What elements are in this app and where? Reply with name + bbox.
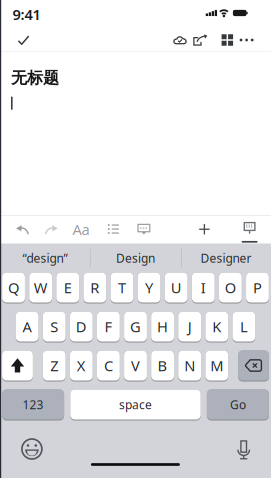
button[interactable]: F [97, 311, 120, 342]
staticText: R [90, 278, 99, 297]
staticText: X [77, 356, 86, 375]
button[interactable]: Designer [181, 243, 271, 272]
staticText: A [23, 317, 32, 336]
button[interactable]: P [246, 272, 269, 303]
staticText: V [131, 356, 140, 375]
button[interactable]: G [124, 311, 147, 342]
staticText: Z [50, 356, 58, 375]
button[interactable]: Undo [16, 224, 30, 235]
button[interactable]: S [43, 311, 66, 342]
button[interactable]: Design [90, 243, 181, 272]
staticText: E [64, 278, 72, 297]
staticText: B [158, 356, 168, 375]
staticText: 123 [23, 396, 44, 412]
button[interactable]: “design” [0, 243, 90, 272]
button[interactable]: I [192, 272, 215, 303]
staticText: L [240, 317, 248, 336]
staticText: Y [145, 278, 153, 297]
button[interactable]: Q [2, 272, 25, 303]
staticText: Q [8, 278, 19, 297]
button[interactable]: Comment [137, 224, 150, 235]
button[interactable]: W [29, 272, 52, 303]
staticText: S [50, 317, 58, 336]
staticText: O [225, 278, 236, 297]
staticText: K [212, 317, 221, 336]
staticText: Design [116, 250, 155, 266]
button[interactable]: 123 [2, 389, 64, 420]
staticText: 9:41 [12, 4, 40, 24]
button[interactable]: Insert [199, 224, 210, 234]
button[interactable]: E [56, 272, 79, 303]
staticText: space [119, 396, 152, 412]
button[interactable]: X [70, 350, 93, 381]
button[interactable]: T [111, 272, 133, 303]
button[interactable]: Sync [173, 28, 186, 52]
button[interactable]: M [205, 350, 228, 381]
button[interactable]: R [83, 272, 106, 303]
button[interactable]: L [232, 311, 255, 342]
button[interactable]: Hide keyboard [242, 215, 258, 243]
button[interactable]: Done [0, 28, 29, 51]
staticText: I [201, 278, 206, 297]
staticText: Designer [200, 250, 251, 266]
button[interactable]: D [70, 311, 93, 342]
staticText: D [76, 317, 87, 336]
button[interactable]: Go [207, 389, 269, 420]
button[interactable]: C [97, 350, 120, 381]
staticText: J [188, 317, 192, 336]
button[interactable]: Templates [222, 28, 233, 52]
button[interactable]: Emoji [21, 438, 43, 460]
button[interactable]: A [16, 311, 38, 342]
button[interactable]: Z [43, 350, 66, 381]
staticText: G [130, 317, 141, 336]
button[interactable]: Dictate [237, 440, 250, 460]
staticText: T [118, 278, 126, 297]
button[interactable]: U [165, 272, 188, 303]
button[interactable]: K [205, 311, 228, 342]
button[interactable]: Redo [44, 224, 58, 235]
button[interactable]: H [151, 311, 174, 342]
staticText: 无标题 [11, 68, 59, 88]
button[interactable]: O [219, 272, 242, 303]
staticText: C [104, 356, 113, 375]
staticText: F [104, 317, 112, 336]
staticText: M [210, 356, 223, 375]
button[interactable]: V [124, 350, 147, 381]
button[interactable]: Y [138, 272, 160, 303]
staticText: N [184, 356, 195, 375]
staticText: Go [230, 396, 246, 412]
button[interactable]: Text format [70, 215, 92, 243]
staticText: P [253, 278, 262, 297]
staticText: W [34, 278, 48, 297]
button[interactable]: N [178, 350, 201, 381]
button[interactable]: Lists [108, 224, 119, 234]
staticText: U [171, 278, 182, 297]
staticText: H [157, 317, 168, 336]
button[interactable]: More [240, 28, 254, 52]
staticText: “design” [22, 250, 67, 266]
button[interactable]: space [70, 389, 201, 420]
button[interactable]: B [151, 350, 174, 381]
staticText: Aa [72, 219, 89, 239]
button[interactable]: Share [193, 28, 209, 52]
button[interactable]: Shift [2, 350, 33, 381]
button[interactable]: J [178, 311, 201, 342]
button[interactable]: Delete [238, 350, 269, 381]
